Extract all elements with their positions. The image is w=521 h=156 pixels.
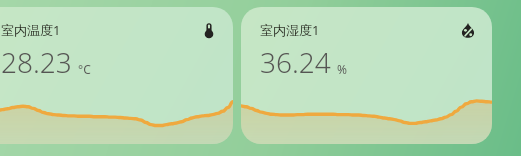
button[interactable]: Humidity <box>460 22 476 38</box>
button[interactable]: 室内湿度1 <box>241 7 492 144</box>
staticText: °C <box>78 61 91 77</box>
button[interactable]: 室内温度1 <box>0 7 233 144</box>
staticText: 室内温度1 <box>1 21 61 39</box>
staticText: 28.23 <box>1 43 72 81</box>
staticText: 室内湿度1 <box>260 21 320 39</box>
staticText: 36.24 <box>260 43 331 81</box>
button[interactable]: Temperature <box>201 22 217 38</box>
staticText: % <box>337 61 347 77</box>
